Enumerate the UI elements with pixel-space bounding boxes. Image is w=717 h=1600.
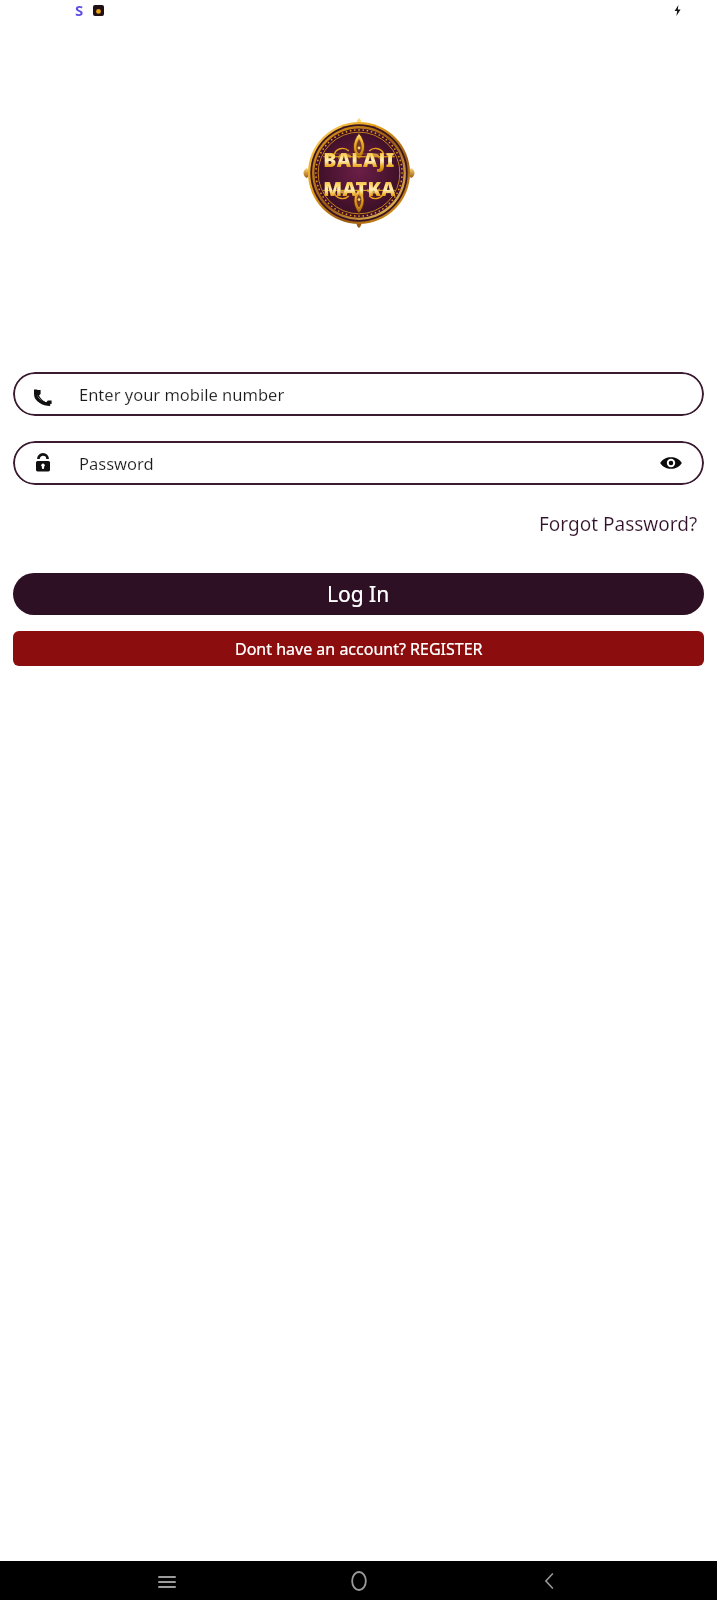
staticText: MATKA: [323, 175, 396, 202]
button[interactable]: Forgot Password?: [533, 508, 704, 540]
staticText: BALAJI: [323, 146, 395, 173]
button[interactable]: Dont have an account? REGISTER: [13, 631, 704, 666]
staticText: Password: [79, 452, 658, 474]
staticText: BALAJI: [323, 146, 395, 173]
staticText: MATKA: [323, 175, 396, 202]
button[interactable]: Back: [526, 1561, 574, 1600]
button[interactable]: Recent apps: [143, 1561, 191, 1600]
button[interactable]: Home: [335, 1561, 383, 1600]
staticText: Enter your mobile number: [79, 383, 285, 405]
button[interactable]: Log In: [13, 573, 704, 615]
button[interactable]: Password: [13, 441, 704, 485]
staticText: Dont have an account? REGISTER: [235, 638, 483, 660]
button[interactable]: Show password: [658, 450, 684, 476]
button[interactable]: Enter your mobile number: [13, 372, 704, 416]
staticText: Forgot Password?: [539, 511, 698, 537]
staticText: Log In: [327, 580, 390, 609]
staticText: S: [75, 0, 84, 20]
